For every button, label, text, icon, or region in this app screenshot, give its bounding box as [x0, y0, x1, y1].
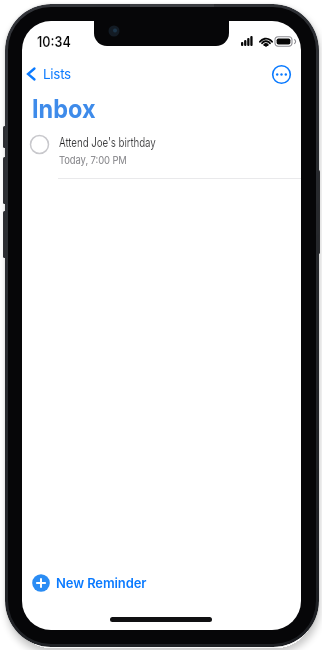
staticText: New Reminder [56, 575, 147, 591]
staticText: 10:34 [37, 33, 71, 51]
button[interactable]: Attend Joe's birthday [30, 132, 292, 163]
staticText: Today, 7:00 PM [59, 153, 128, 166]
staticText: Lists [43, 66, 71, 82]
staticText: Inbox [32, 93, 96, 124]
staticText: Attend Joe's birthday [59, 135, 156, 150]
button[interactable] [271, 64, 292, 85]
button[interactable]: Lists [25, 65, 72, 83]
button[interactable]: New Reminder [31, 573, 148, 593]
